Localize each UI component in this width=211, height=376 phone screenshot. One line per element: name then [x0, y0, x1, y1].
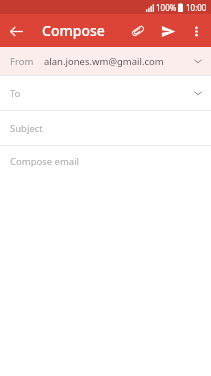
button[interactable]: Attach file: [123, 16, 153, 46]
staticText: From: [10, 55, 34, 68]
button[interactable]: More options: [183, 18, 209, 44]
button[interactable]: Send: [153, 16, 183, 46]
button[interactable]: Compose email: [0, 146, 211, 376]
button[interactable]: To: [0, 76, 211, 111]
button[interactable]: Subject: [0, 111, 211, 146]
staticText: Subject: [10, 122, 43, 135]
staticText: 100%: [156, 2, 177, 13]
staticText: Compose: [42, 21, 105, 40]
staticText: To: [10, 87, 21, 100]
button[interactable]: From: [0, 47, 211, 76]
staticText: 10:00: [186, 2, 207, 13]
staticText: Compose email: [10, 155, 80, 168]
staticText: alan.jones.wm@gmail.com: [44, 55, 164, 68]
button[interactable]: Navigate up: [0, 15, 32, 47]
